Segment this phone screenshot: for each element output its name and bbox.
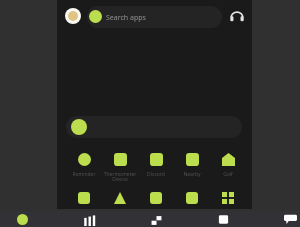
button[interactable]: Home (11, 208, 33, 227)
button[interactable]: Stats (78, 209, 100, 227)
button[interactable]: App 6 (67, 188, 101, 208)
button[interactable]: Thermometer Device (102, 153, 138, 179)
button[interactable]: Chat (279, 208, 300, 227)
staticText: Golf (210, 171, 246, 178)
button[interactable]: App 10 (211, 188, 245, 208)
button[interactable] (66, 116, 242, 138)
staticText: Reminder (66, 171, 102, 178)
button[interactable]: App 8 (139, 188, 173, 208)
button[interactable]: App 9 (175, 188, 209, 208)
button[interactable]: Discord (138, 153, 174, 179)
button[interactable]: Nearby (174, 153, 210, 179)
button[interactable]: Search apps (87, 6, 222, 28)
button[interactable]: Profile (65, 8, 81, 24)
button[interactable]: Golf (210, 153, 246, 179)
button[interactable]: Apps (212, 208, 234, 227)
staticText: Search apps (106, 13, 146, 23)
staticText: Thermometer Device (102, 171, 138, 182)
staticText: Nearby (174, 171, 210, 178)
button[interactable]: Headphones (229, 9, 245, 25)
button[interactable]: App 7 (103, 188, 137, 208)
button[interactable]: Split screen (145, 209, 167, 227)
staticText: Discord (138, 171, 174, 178)
button[interactable]: Reminder (66, 153, 102, 179)
